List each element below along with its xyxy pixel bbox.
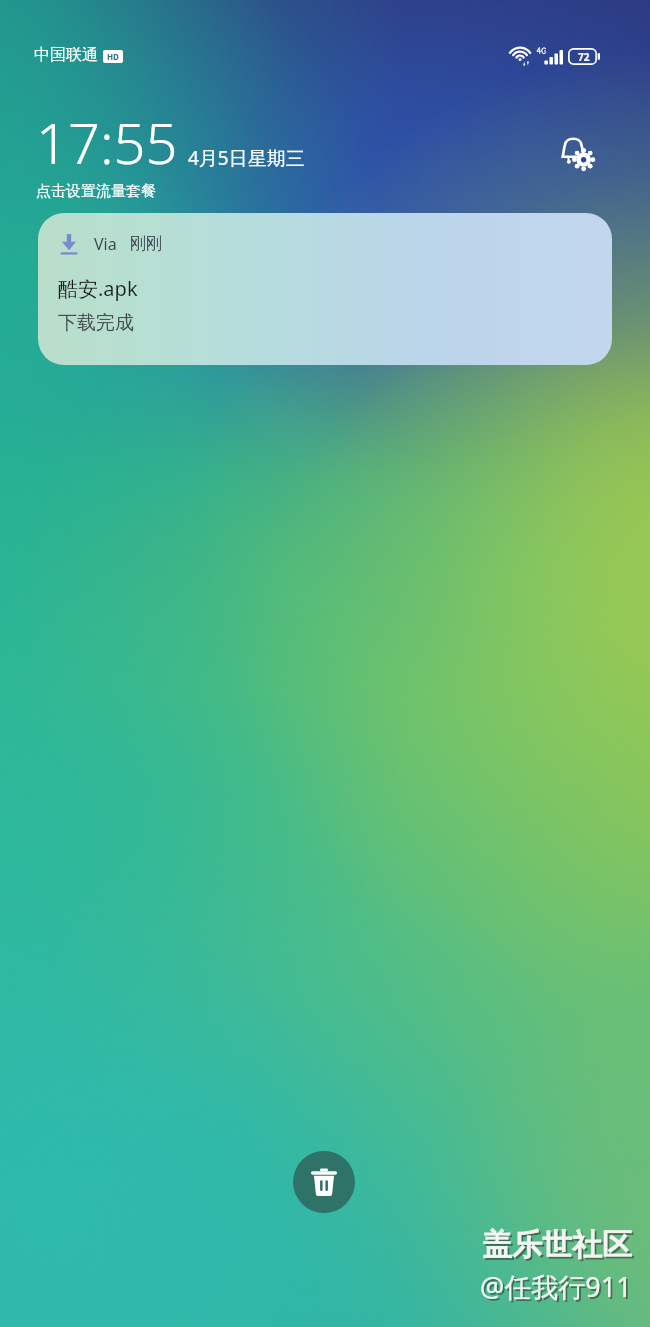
- staticText: 72: [578, 50, 590, 64]
- staticText: 点击设置流量套餐: [36, 182, 156, 201]
- staticText: 盖乐世社区: [482, 1226, 632, 1264]
- staticText: 4月5日星期三: [188, 145, 305, 171]
- button[interactable]: 点击设置流量套餐: [36, 182, 156, 201]
- staticText: HD: [107, 51, 119, 62]
- button[interactable]: Clear all notifications: [293, 1151, 355, 1213]
- staticText: 下载完成: [58, 311, 134, 335]
- button[interactable]: Notification settings: [549, 125, 601, 177]
- staticText: 酷安.apk: [58, 275, 138, 302]
- staticText: @任我行911: [480, 1268, 632, 1305]
- button[interactable]: Via: [38, 213, 612, 365]
- staticText: Via: [94, 233, 117, 255]
- staticText: 刚刚: [130, 234, 162, 254]
- staticText: @任我行911: [482, 1270, 634, 1307]
- staticText: 中国联通: [34, 45, 98, 65]
- staticText: 17:55: [36, 104, 178, 180]
- staticText: 盖乐世社区: [484, 1228, 634, 1266]
